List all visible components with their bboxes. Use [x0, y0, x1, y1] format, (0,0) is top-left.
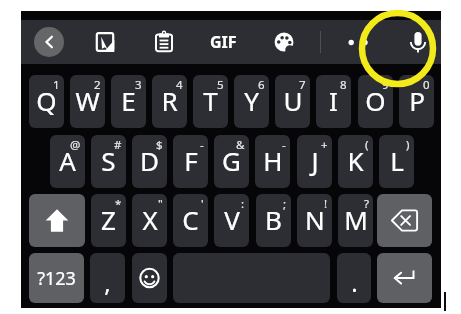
- staticText: E: [121, 83, 136, 118]
- button[interactable]: .: [337, 253, 371, 303]
- button[interactable]: X: [132, 194, 167, 247]
- staticText: +: [321, 137, 328, 153]
- staticText: G: [222, 143, 241, 178]
- staticText: 6: [258, 77, 265, 93]
- staticText: 3: [135, 77, 142, 93]
- staticText: 4: [176, 77, 183, 93]
- staticText: ?: [364, 196, 369, 212]
- button[interactable]: K: [338, 135, 373, 188]
- staticText: N: [305, 202, 325, 237]
- button[interactable]: N: [297, 194, 332, 247]
- staticText: #: [114, 137, 122, 153]
- button[interactable]: U: [275, 75, 310, 128]
- button[interactable]: ?123: [29, 253, 84, 303]
- staticText: Y: [244, 83, 259, 118]
- staticText: 7: [299, 77, 306, 93]
- button[interactable]: Y: [234, 75, 269, 128]
- staticText: -: [282, 137, 286, 153]
- button[interactable]: Enter: [377, 253, 432, 303]
- staticText: 1: [53, 77, 60, 93]
- button[interactable]: T: [193, 75, 228, 128]
- button[interactable]: L: [379, 135, 414, 188]
- staticText: B: [265, 202, 282, 237]
- button[interactable]: ,: [90, 253, 125, 303]
- staticText: U: [283, 83, 303, 118]
- button[interactable]: M: [338, 194, 373, 247]
- button[interactable]: G: [214, 135, 249, 188]
- button[interactable]: S: [91, 135, 126, 188]
- button[interactable]: Stickers: [88, 25, 122, 59]
- staticText: 0: [423, 77, 430, 93]
- staticText: !: [324, 196, 328, 212]
- button[interactable]: A: [50, 135, 85, 188]
- button[interactable]: Theme: [267, 25, 301, 59]
- staticText: .: [351, 266, 358, 299]
- button[interactable]: Voice input: [401, 25, 435, 59]
- button[interactable]: GIF: [201, 28, 245, 56]
- button[interactable]: E: [111, 75, 146, 128]
- staticText: L: [390, 143, 404, 178]
- staticText: Z: [101, 202, 116, 237]
- staticText: A: [59, 143, 76, 178]
- staticText: Q: [36, 83, 57, 118]
- staticText: D: [140, 143, 159, 178]
- staticText: ): [406, 137, 410, 153]
- button[interactable]: Emoji: [132, 253, 167, 303]
- staticText: 5: [217, 77, 224, 93]
- staticText: R: [161, 83, 178, 118]
- staticText: H: [263, 143, 283, 178]
- button[interactable]: More options: [344, 30, 374, 55]
- staticText: &: [236, 137, 245, 153]
- button[interactable]: J: [297, 135, 332, 188]
- button[interactable]: Shift: [29, 194, 85, 247]
- button[interactable]: Backspace: [377, 194, 432, 247]
- staticText: F: [184, 143, 198, 178]
- staticText: T: [203, 83, 218, 118]
- staticText: ": [158, 196, 163, 212]
- staticText: GIF: [210, 31, 237, 53]
- staticText: 8: [340, 77, 347, 93]
- staticText: P: [409, 83, 425, 118]
- staticText: W: [75, 83, 100, 118]
- staticText: $: [156, 137, 163, 153]
- staticText: -: [200, 137, 204, 153]
- button[interactable]: P: [399, 75, 434, 128]
- button[interactable]: D: [132, 135, 167, 188]
- staticText: 9: [382, 77, 389, 93]
- staticText: K: [347, 143, 364, 178]
- staticText: ': [201, 196, 204, 212]
- button[interactable]: F: [173, 135, 208, 188]
- button[interactable]: Q: [29, 75, 64, 128]
- button[interactable]: O: [358, 75, 393, 128]
- staticText: M: [344, 202, 368, 237]
- staticText: V: [224, 202, 240, 237]
- staticText: ;: [283, 196, 287, 212]
- button[interactable]: V: [214, 194, 249, 247]
- staticText: C: [182, 202, 199, 237]
- button[interactable]: W: [70, 75, 105, 128]
- staticText: 2: [94, 77, 101, 93]
- button[interactable]: B: [256, 194, 291, 247]
- staticText: S: [101, 143, 116, 178]
- staticText: @: [70, 137, 81, 153]
- staticText: ,: [104, 266, 111, 299]
- button[interactable]: Z: [91, 194, 126, 247]
- staticText: I: [329, 83, 338, 118]
- staticText: O: [365, 83, 386, 118]
- staticText: :: [241, 196, 245, 212]
- button[interactable]: C: [173, 194, 208, 247]
- staticText: J: [311, 143, 319, 178]
- staticText: *: [115, 196, 122, 212]
- button[interactable]: Back: [34, 27, 64, 57]
- button[interactable]: H: [255, 135, 290, 188]
- staticText: ?123: [37, 266, 76, 291]
- staticText: X: [142, 202, 158, 237]
- button[interactable]: I: [316, 75, 351, 128]
- staticText: (: [365, 137, 369, 153]
- button[interactable]: R: [152, 75, 187, 128]
- button[interactable]: Clipboard: [147, 25, 181, 59]
